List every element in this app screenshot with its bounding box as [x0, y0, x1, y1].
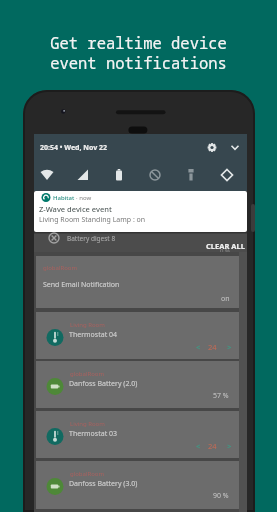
staticText: Living Room Standing Lamp : on [39, 215, 146, 225]
staticText: Battery digest 8 [67, 234, 116, 243]
staticText: 24 [208, 342, 217, 352]
staticText: Thermostat 04 [69, 330, 117, 340]
staticText: Send Email Notification [43, 280, 120, 290]
staticText: 90 % [213, 491, 229, 501]
staticText: Z-Wave device event [39, 204, 112, 214]
staticText: < [196, 441, 201, 451]
staticText: on [221, 294, 230, 304]
staticText: < [196, 342, 201, 352]
staticText: · now [76, 194, 92, 202]
staticText: globalRoom [70, 370, 105, 378]
staticText: Living Room [70, 321, 105, 329]
staticText: CLEAR ALL [206, 241, 245, 251]
staticText: 24 [208, 441, 217, 451]
staticText: 0 % [220, 247, 230, 255]
staticText: 20:54 • Wed, Nov 22 [40, 143, 108, 153]
staticText: Living Room [70, 420, 105, 428]
staticText: 57 % [213, 391, 229, 401]
staticText: > [227, 342, 232, 352]
staticText: > [227, 441, 232, 451]
staticText: Thermostat 03 [69, 429, 117, 439]
staticText: globalRoom [43, 264, 78, 272]
staticText: Habitat [53, 194, 75, 202]
staticText: Danfoss Battery (2.0) [69, 379, 138, 389]
staticText: Danfoss Battery (3.0) [69, 479, 138, 489]
staticText: globalRoom [70, 470, 105, 478]
staticText: Get realtime device event notifications [0, 32, 277, 73]
